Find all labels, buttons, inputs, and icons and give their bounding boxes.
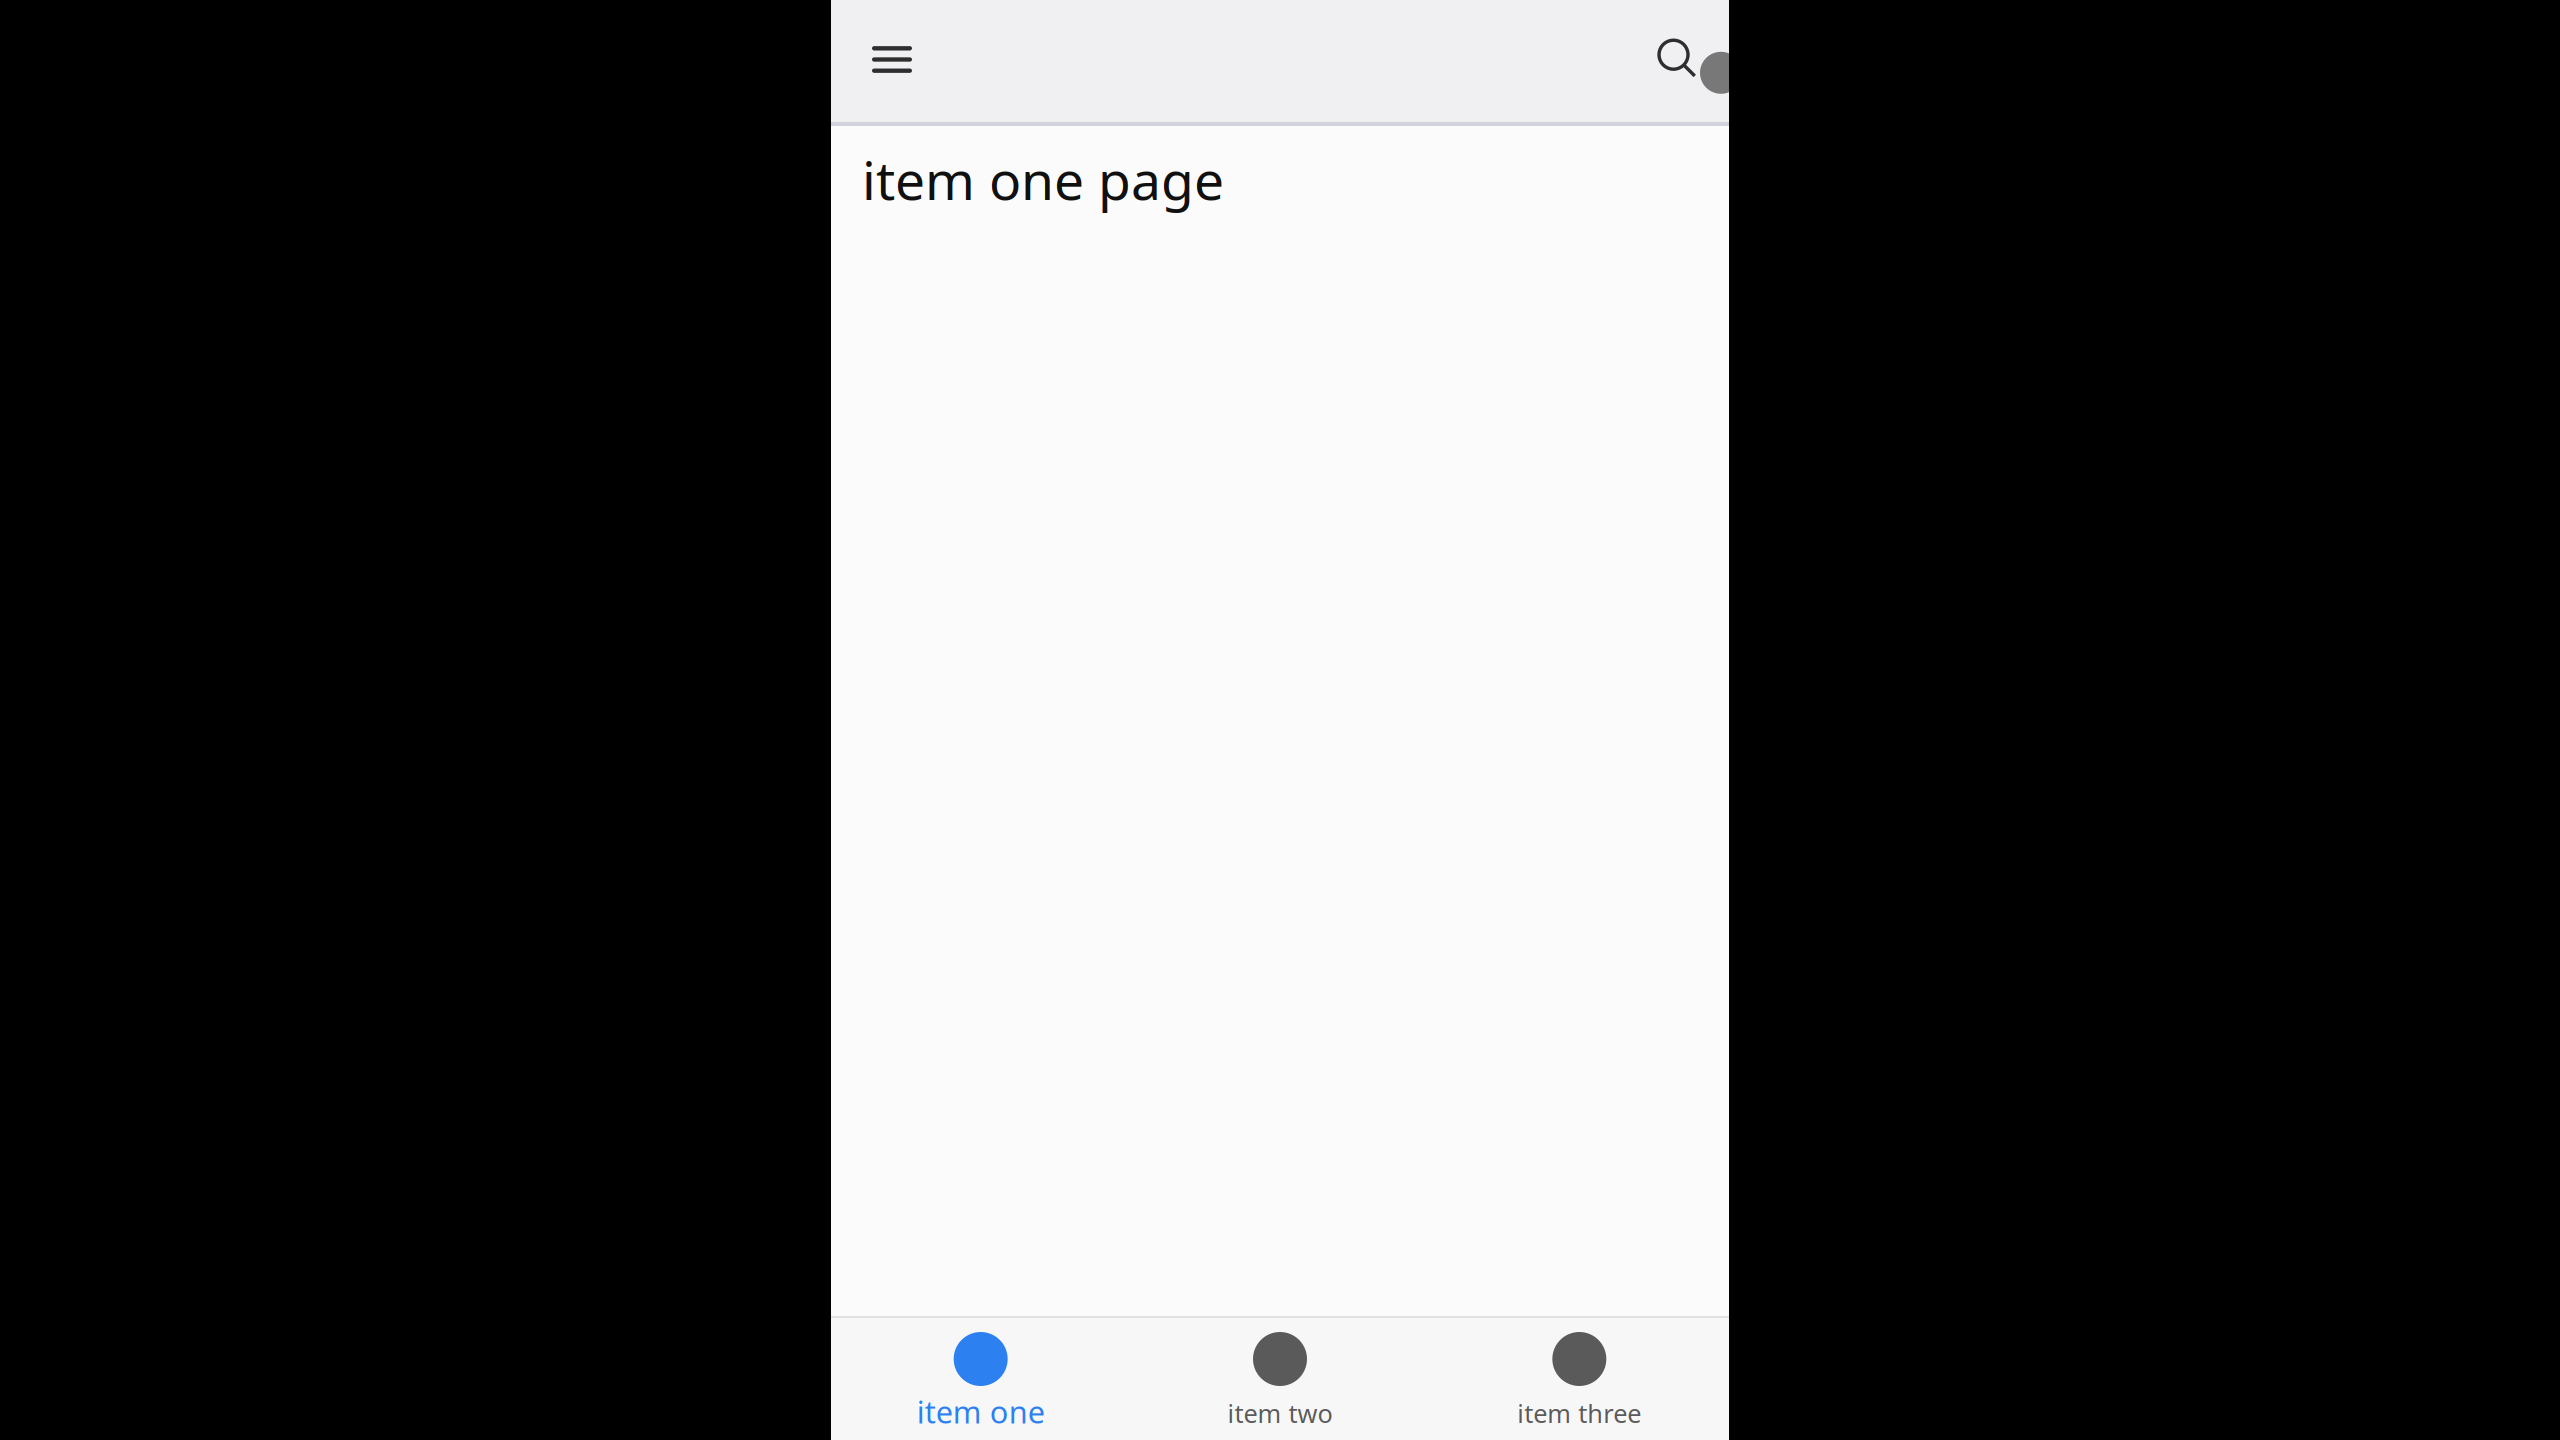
button[interactable]: Account — [1693, 45, 1749, 101]
button[interactable]: item one — [831, 1318, 1130, 1440]
staticText: item three — [1517, 1396, 1641, 1430]
button[interactable]: Menu — [856, 23, 928, 95]
button[interactable]: item two — [1130, 1318, 1430, 1440]
staticText: item one page — [862, 144, 1224, 215]
staticText: item one — [917, 1391, 1045, 1432]
staticText: item two — [1227, 1396, 1332, 1430]
button[interactable]: Search — [1646, 28, 1710, 92]
button[interactable]: item three — [1430, 1318, 1729, 1440]
